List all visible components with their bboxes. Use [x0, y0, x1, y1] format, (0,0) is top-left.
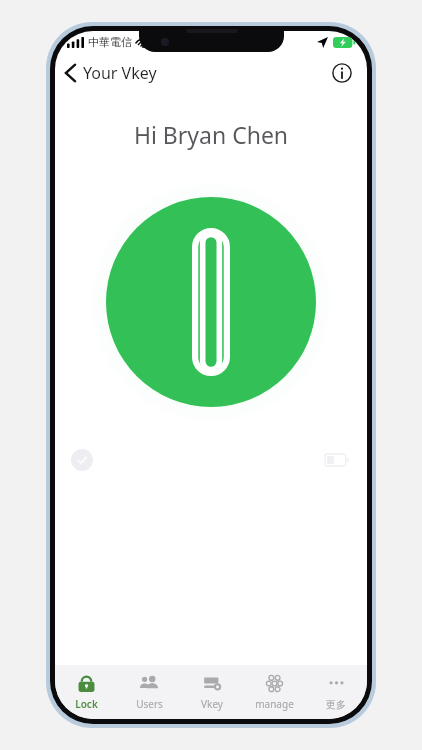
button[interactable]: Users [118, 665, 181, 719]
staticText: 更多 [326, 698, 346, 711]
button[interactable]: manage [243, 665, 305, 719]
staticText: Vkey [201, 697, 223, 711]
staticText: Lock [75, 697, 98, 711]
staticText: Hi Bryan Chen [55, 119, 367, 150]
button[interactable]: Your Vkey [55, 56, 167, 90]
staticText: Users [136, 697, 163, 711]
button[interactable]: 更多 [305, 665, 367, 719]
staticText: Your Vkey [83, 62, 157, 84]
button[interactable]: Lock [55, 665, 118, 719]
button[interactable]: Unlock [106, 197, 316, 407]
button[interactable]: Vkey [181, 665, 243, 719]
staticText: manage [255, 697, 294, 711]
staticText: 中華電信 [88, 35, 132, 49]
button[interactable]: Info [325, 56, 359, 90]
